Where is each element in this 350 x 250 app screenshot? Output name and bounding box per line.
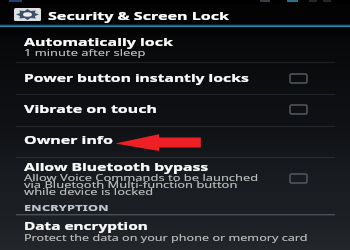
staticText: Automatically lock <box>24 35 173 49</box>
button[interactable] <box>0 29 350 62</box>
staticText: via Bluetooth Multi-function button <box>24 179 238 191</box>
staticText: Allow Bluetooth bypass <box>24 160 209 174</box>
staticText: Owner info <box>24 133 113 147</box>
staticText: while device is locked <box>24 185 154 197</box>
staticText: Power button instantly locks <box>24 71 249 84</box>
button[interactable]: Checkbox <box>290 105 307 114</box>
staticText: ENCRYPTION <box>24 203 109 214</box>
button[interactable] <box>0 95 350 126</box>
button[interactable]: Checkbox <box>290 174 307 183</box>
button[interactable]: Checkbox <box>290 74 307 83</box>
button[interactable] <box>0 159 350 197</box>
staticText: Allow Voice Commands to be launched <box>24 172 259 183</box>
button[interactable]: Settings <box>14 8 41 21</box>
button[interactable] <box>0 63 350 94</box>
button[interactable] <box>0 214 350 250</box>
staticText: Security & Screen Lock <box>48 9 230 23</box>
button[interactable] <box>0 127 350 158</box>
staticText: Protect the data on your phone or memory… <box>24 232 308 243</box>
staticText: 1 minute after sleep <box>24 47 146 59</box>
staticText: Data encryption <box>24 220 148 234</box>
staticText: Vibrate on touch <box>24 102 157 116</box>
